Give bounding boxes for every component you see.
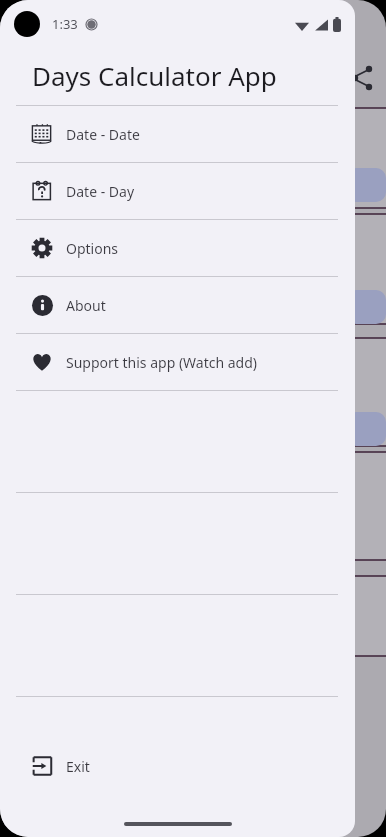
other: Exit: [31, 755, 53, 777]
staticText: Support this app (Watch add): [66, 353, 258, 372]
other: About: [32, 295, 53, 316]
staticText: Date - Date: [66, 125, 140, 144]
other: Options: [31, 237, 53, 259]
staticText: 1:33: [52, 15, 78, 33]
button[interactable]: Support this app: [0, 334, 355, 390]
other: Date to day: [30, 179, 54, 203]
staticText: About: [66, 296, 106, 315]
staticText: Options: [66, 239, 119, 258]
button[interactable]: Exit: [0, 738, 355, 794]
staticText: Date - Day: [66, 182, 135, 201]
other: Date minus date: [30, 122, 54, 146]
other: Support this app: [31, 351, 53, 373]
button[interactable]: Date to day: [0, 163, 355, 219]
button[interactable]: Options: [0, 220, 355, 276]
button[interactable]: Date minus date: [0, 106, 355, 162]
staticText: Days Calculator App: [32, 58, 277, 93]
staticText: Exit: [66, 757, 90, 776]
button[interactable]: About: [0, 277, 355, 333]
